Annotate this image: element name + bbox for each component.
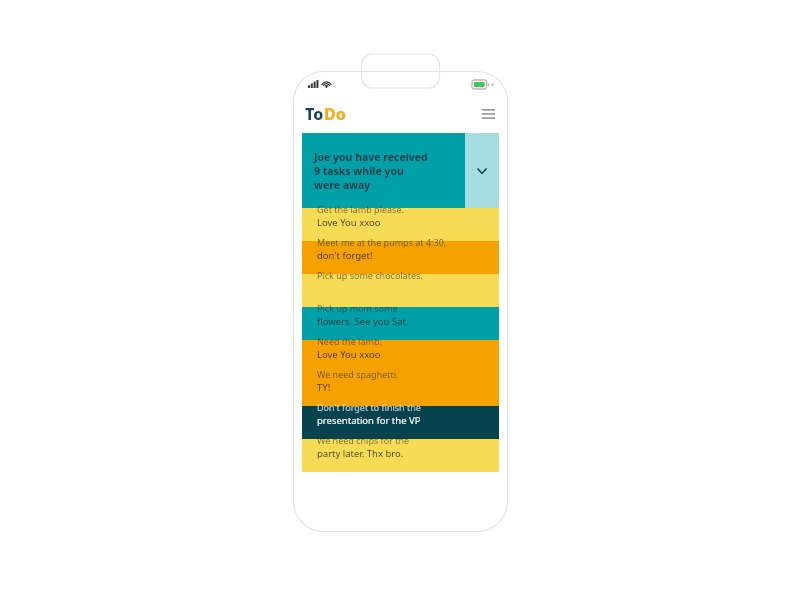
staticText: Pick up mom some — [317, 302, 398, 314]
staticText: Love You xxoo — [317, 216, 381, 229]
button[interactable]: Menu — [478, 104, 498, 124]
staticText: presentation for the VP — [317, 414, 421, 427]
button[interactable]: Get the lamb please. — [302, 208, 499, 241]
button[interactable]: To — [305, 103, 346, 125]
staticText: Don't forget to finish the — [317, 401, 421, 413]
staticText: Joe you have received 9 tasks while you … — [314, 150, 428, 192]
button[interactable]: Need the lamb. — [302, 340, 499, 373]
staticText: flowers. See you Sat. — [317, 315, 409, 328]
staticText: don't forget! — [317, 249, 373, 262]
staticText: Meet me at the pumps at 4:30, — [317, 236, 447, 248]
button[interactable]: Meet me at the pumps at 4:30, — [302, 241, 499, 274]
staticText: Do — [324, 103, 346, 125]
button[interactable]: Pick up mom some — [302, 307, 499, 340]
button[interactable]: We need chips for the — [302, 439, 499, 472]
staticText: Need the lamb. — [317, 335, 382, 347]
button[interactable]: We need spaghetti. — [302, 373, 499, 406]
staticText: Get the lamb please. — [317, 203, 404, 215]
staticText: We need spaghetti. — [317, 368, 399, 380]
staticText: Love You xxoo — [317, 348, 381, 361]
staticText: Pick up some chocolates. — [317, 269, 423, 281]
button[interactable]: Pick up some chocolates. — [302, 274, 499, 307]
staticText: party later. Thx bro. — [317, 447, 404, 460]
button[interactable]: Joe you have received 9 tasks while you … — [302, 133, 499, 208]
other: Expand — [465, 133, 499, 208]
staticText: We need chips for the — [317, 434, 410, 446]
button[interactable]: Don't forget to finish the — [302, 406, 499, 439]
staticText: To — [305, 103, 324, 125]
staticText: TY! — [317, 381, 331, 394]
